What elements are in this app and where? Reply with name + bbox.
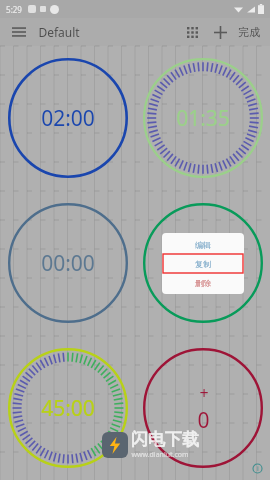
button[interactable]: + [135,335,270,480]
staticText: 完成 [238,25,260,39]
button[interactable]: 完成 [234,21,264,43]
staticText: + [199,382,209,404]
staticText: 02:00 [41,104,95,133]
button[interactable]: 01:35 [135,46,270,190]
button[interactable]: 45:00 [0,335,135,480]
button[interactable]: 编辑 [135,190,270,335]
staticText: 编辑 [195,240,211,250]
button[interactable]: 编辑 [162,235,244,254]
button[interactable]: 00:00 [0,190,135,335]
button[interactable]: 复制 [163,254,243,273]
button[interactable]: Menu [8,21,30,43]
staticText: 45:00 [41,394,95,423]
staticText: 删除 [195,278,211,288]
staticText: 5:29 [6,4,22,15]
staticText: i [257,464,259,474]
button[interactable]: 02:00 [0,46,135,190]
staticText: 闪电下载 [131,429,199,450]
button[interactable]: Grid view [180,20,204,44]
staticText: www.dianlut.com [131,450,189,460]
staticText: 0 [197,406,210,435]
staticText: Default [38,24,80,40]
button[interactable]: 删除 [162,273,244,292]
staticText: 00:00 [41,249,95,278]
staticText: 01:35 [176,104,230,133]
button[interactable]: Add [208,20,232,44]
button[interactable]: Info [252,463,263,474]
staticText: 复制 [195,259,211,269]
